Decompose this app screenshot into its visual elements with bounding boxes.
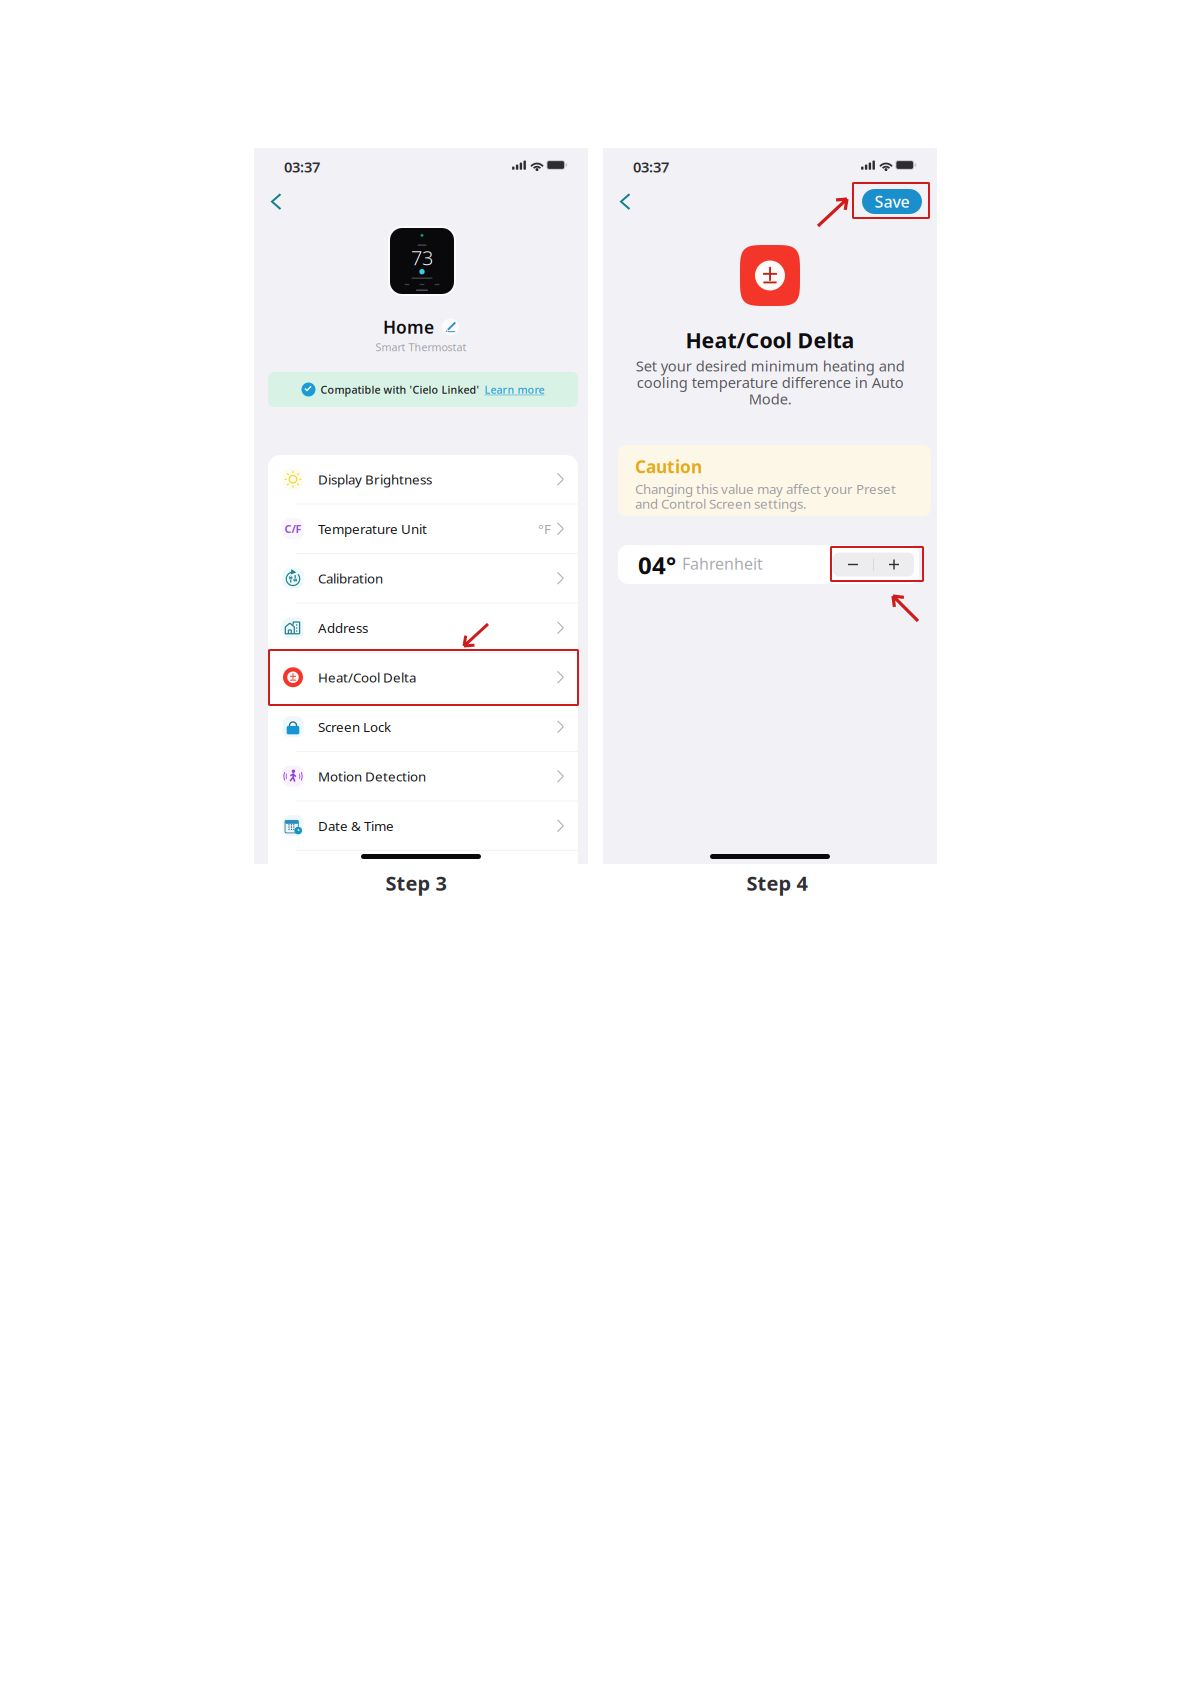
staticText: 73 (411, 244, 433, 271)
button[interactable]: Decrease (833, 552, 873, 576)
button[interactable]: Rename home (442, 318, 459, 335)
staticText: Display Brightness (318, 470, 432, 488)
button[interactable]: Address (268, 603, 578, 652)
button[interactable]: Calibration (268, 554, 578, 602)
staticText: Compatible with 'Cielo Linked' (320, 382, 479, 397)
staticText: Date & Time (318, 817, 394, 835)
staticText: C/F (284, 522, 301, 536)
staticText: Save (874, 191, 909, 212)
button[interactable]: Back (612, 186, 638, 217)
staticText: Caution (635, 455, 702, 478)
staticText: Smart Thermostat (375, 340, 466, 354)
button[interactable]: Timezone (268, 851, 578, 899)
button[interactable]: Learn more (479, 382, 544, 397)
staticText: °F (538, 520, 551, 538)
button[interactable]: Save (862, 189, 922, 214)
staticText: Fahrenheit (682, 553, 763, 574)
staticText: 04° (638, 549, 676, 581)
staticText: Temperature Unit (318, 520, 427, 538)
staticText: Heat/Cool Delta (685, 326, 854, 354)
staticText: Changing this value may affect your Pres… (635, 480, 896, 512)
staticText: Set your desired minimum heating and coo… (635, 356, 904, 408)
button[interactable]: Back (263, 186, 289, 217)
staticText: Step 3 (385, 870, 446, 896)
staticText: Motion Detection (318, 767, 426, 785)
staticText: Learn more (484, 382, 544, 397)
button[interactable]: Motion Detection (268, 752, 578, 800)
staticText: Home (383, 315, 434, 338)
button[interactable]: Screen Lock (268, 702, 578, 751)
staticText: Calibration (318, 569, 383, 587)
button[interactable]: C/F (268, 504, 578, 553)
staticText: Address (318, 619, 368, 637)
button[interactable]: Increase (874, 552, 914, 576)
staticText: Step 4 (746, 870, 807, 896)
button[interactable]: Date & Time (268, 801, 578, 850)
staticText: Heat/Cool Delta (318, 668, 416, 686)
staticText: 03:37 (284, 157, 320, 176)
staticText: Screen Lock (318, 718, 391, 736)
button[interactable]: Display Brightness (268, 455, 578, 503)
staticText: 03:37 (633, 157, 669, 176)
button[interactable]: Heat/Cool Delta (268, 653, 578, 701)
